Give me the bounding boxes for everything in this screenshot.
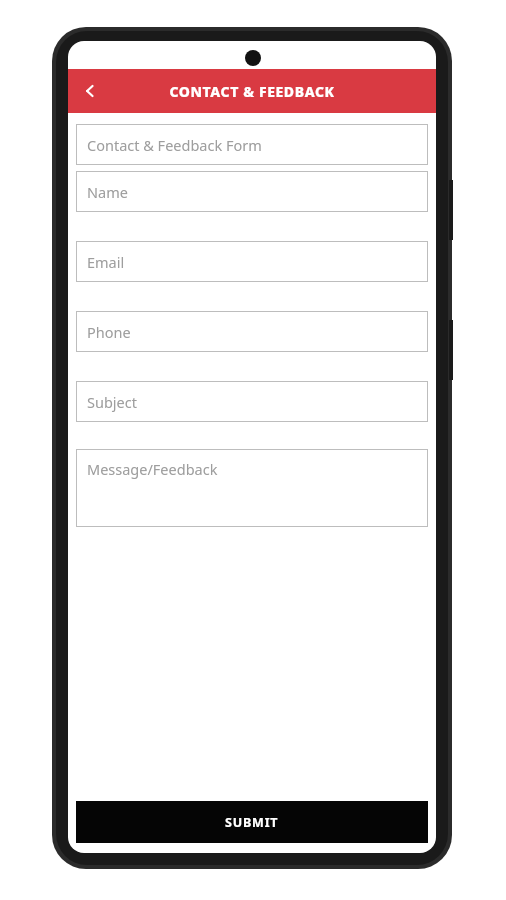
button[interactable]: Message/Feedback — [76, 449, 428, 527]
staticText: Phone — [87, 322, 131, 342]
button[interactable]: Email — [76, 241, 428, 282]
staticText: Name — [87, 182, 128, 202]
button[interactable]: Back — [68, 69, 112, 113]
button[interactable]: Subject — [76, 381, 428, 422]
button[interactable]: SUBMIT — [76, 801, 428, 843]
staticText: Email — [87, 252, 125, 272]
button[interactable]: Phone — [76, 311, 428, 352]
staticText: Message/Feedback — [87, 459, 218, 479]
staticText: Contact & Feedback Form — [87, 135, 262, 155]
staticText: Subject — [87, 392, 137, 412]
button[interactable]: Contact & Feedback Form — [76, 124, 428, 165]
button[interactable]: Name — [76, 171, 428, 212]
staticText: SUBMIT — [225, 814, 279, 831]
staticText: CONTACT & FEEDBACK — [169, 82, 335, 101]
